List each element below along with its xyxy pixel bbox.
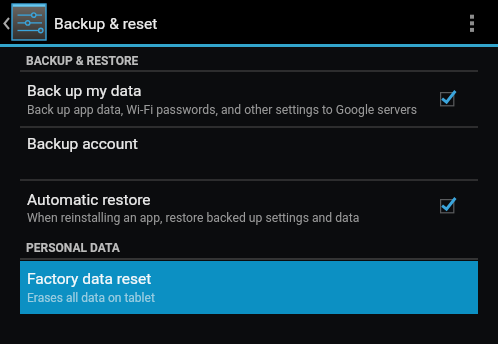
staticText: PERSONAL DATA <box>26 241 120 255</box>
button[interactable]: Back up my data <box>0 72 498 126</box>
staticText: When reinstalling an app, restore backed… <box>27 211 360 225</box>
staticText: Erases all data on tablet <box>27 291 155 305</box>
button[interactable]: More options <box>451 0 493 44</box>
staticText: Factory data reset <box>27 270 152 288</box>
button[interactable]: Navigate up <box>0 0 12 44</box>
staticText: Automatic restore <box>27 191 151 209</box>
button[interactable]: Backup account <box>0 128 498 179</box>
button[interactable]: Automatic restore, checked <box>428 192 466 220</box>
button[interactable]: Automatic restore <box>0 181 498 235</box>
staticText: Back up app data, Wi-Fi passwords, and o… <box>27 103 418 117</box>
staticText: Backup account <box>27 135 138 153</box>
button[interactable]: Back up my data, checked <box>428 85 466 113</box>
staticText: Back up my data <box>27 82 142 100</box>
staticText: Backup & reset <box>54 15 158 33</box>
staticText: BACKUP & RESTORE <box>26 54 139 68</box>
button[interactable]: Factory data reset <box>20 261 478 314</box>
button[interactable]: Backup and reset <box>12 4 46 40</box>
